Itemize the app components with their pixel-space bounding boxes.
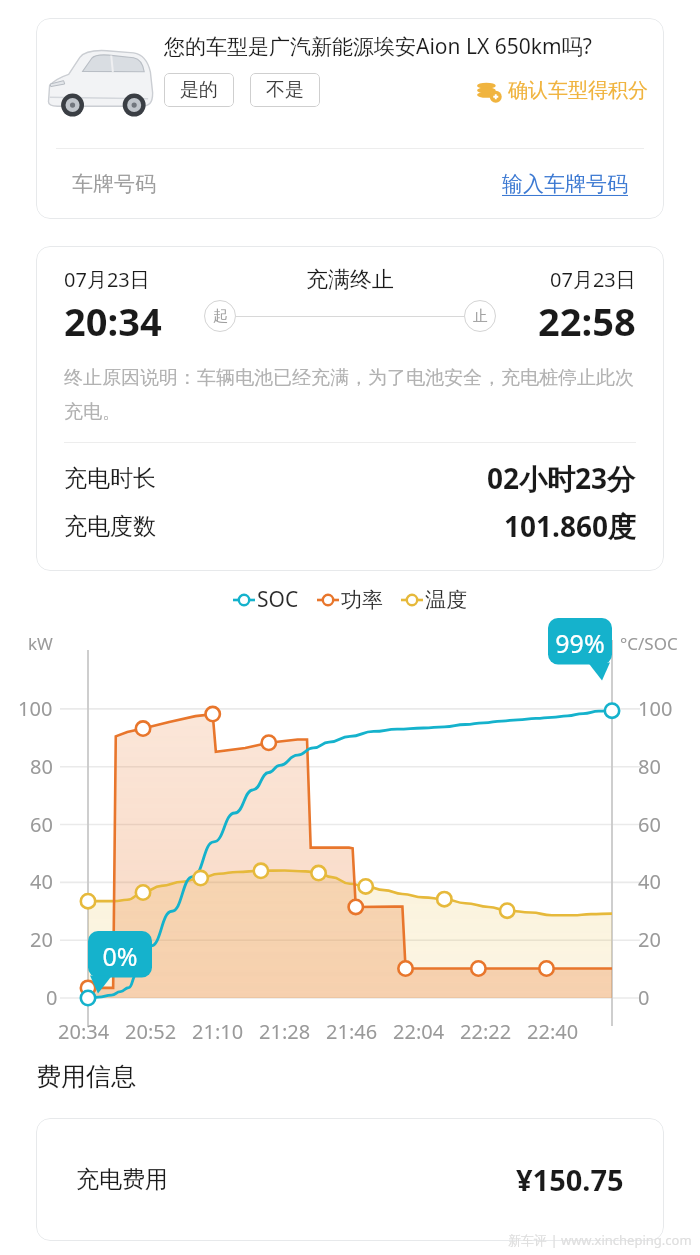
staticText: 07月23日 <box>64 266 150 293</box>
button[interactable]: 是的 <box>164 73 234 107</box>
other: 积分 <box>476 79 502 103</box>
staticText: 止 <box>473 307 488 326</box>
staticText: 功率 <box>341 587 383 613</box>
staticText: 0 <box>638 984 650 1011</box>
button[interactable]: SOC <box>233 585 299 614</box>
staticText: 100 <box>638 695 673 722</box>
staticText: 07月23日 <box>550 266 636 293</box>
button[interactable]: 功率 <box>317 587 383 613</box>
staticText: 终止原因说明：车辆电池已经充满，为了电池安全，充电桩停止此次充电。 <box>64 366 636 424</box>
staticText: 20:34 <box>58 1018 110 1045</box>
staticText: 80 <box>30 753 53 780</box>
staticText: 21:10 <box>192 1018 244 1045</box>
staticText: 温度 <box>425 587 467 613</box>
staticText: 21:46 <box>326 1018 378 1045</box>
staticText: 40 <box>638 868 661 895</box>
staticText: 101.860度 <box>504 507 636 545</box>
staticText: ¥150.75 <box>516 1160 624 1199</box>
staticText: °C/SOC <box>620 632 678 655</box>
staticText: 确认车型得积分 <box>508 78 648 103</box>
button[interactable]: 积分 <box>476 74 648 107</box>
staticText: 80 <box>638 753 661 780</box>
staticText: 100 <box>18 695 53 722</box>
staticText: 0 <box>46 984 58 1011</box>
staticText: 22:58 <box>538 295 636 347</box>
staticText: 是的 <box>180 78 218 102</box>
button[interactable]: 车牌号码 <box>36 149 664 219</box>
staticText: 充电时长 <box>64 464 156 493</box>
staticText: 99% <box>548 626 612 660</box>
staticText: 21:28 <box>259 1018 311 1045</box>
staticText: SOC <box>257 585 299 614</box>
staticText: 新车评 | www.xincheping.com <box>508 1231 692 1249</box>
staticText: 22:22 <box>460 1018 512 1045</box>
staticText: 充电度数 <box>64 512 156 541</box>
staticText: 60 <box>30 811 53 838</box>
staticText: 20:52 <box>125 1018 177 1045</box>
staticText: 22:40 <box>527 1018 579 1045</box>
staticText: 40 <box>30 868 53 895</box>
staticText: 02小时23分 <box>487 459 636 497</box>
button[interactable]: 不是 <box>250 73 320 107</box>
staticText: 20:34 <box>64 295 162 347</box>
staticText: 60 <box>638 811 661 838</box>
staticText: 充电费用 <box>76 1165 168 1194</box>
staticText: 充满终止 <box>306 266 394 294</box>
staticText: 0% <box>88 939 152 973</box>
staticText: kW <box>28 632 53 655</box>
staticText: 输入车牌号码 <box>502 171 628 197</box>
staticText: 20 <box>638 926 661 953</box>
staticText: 费用信息 <box>36 1061 136 1092</box>
staticText: 您的车型是广汽新能源埃安Aion LX 650km吗? <box>164 32 592 61</box>
staticText: 车牌号码 <box>72 171 156 197</box>
staticText: 起 <box>213 307 228 326</box>
button[interactable]: 温度 <box>401 587 467 613</box>
staticText: 20 <box>30 926 53 953</box>
staticText: 不是 <box>266 78 304 102</box>
staticText: 22:04 <box>393 1018 445 1045</box>
